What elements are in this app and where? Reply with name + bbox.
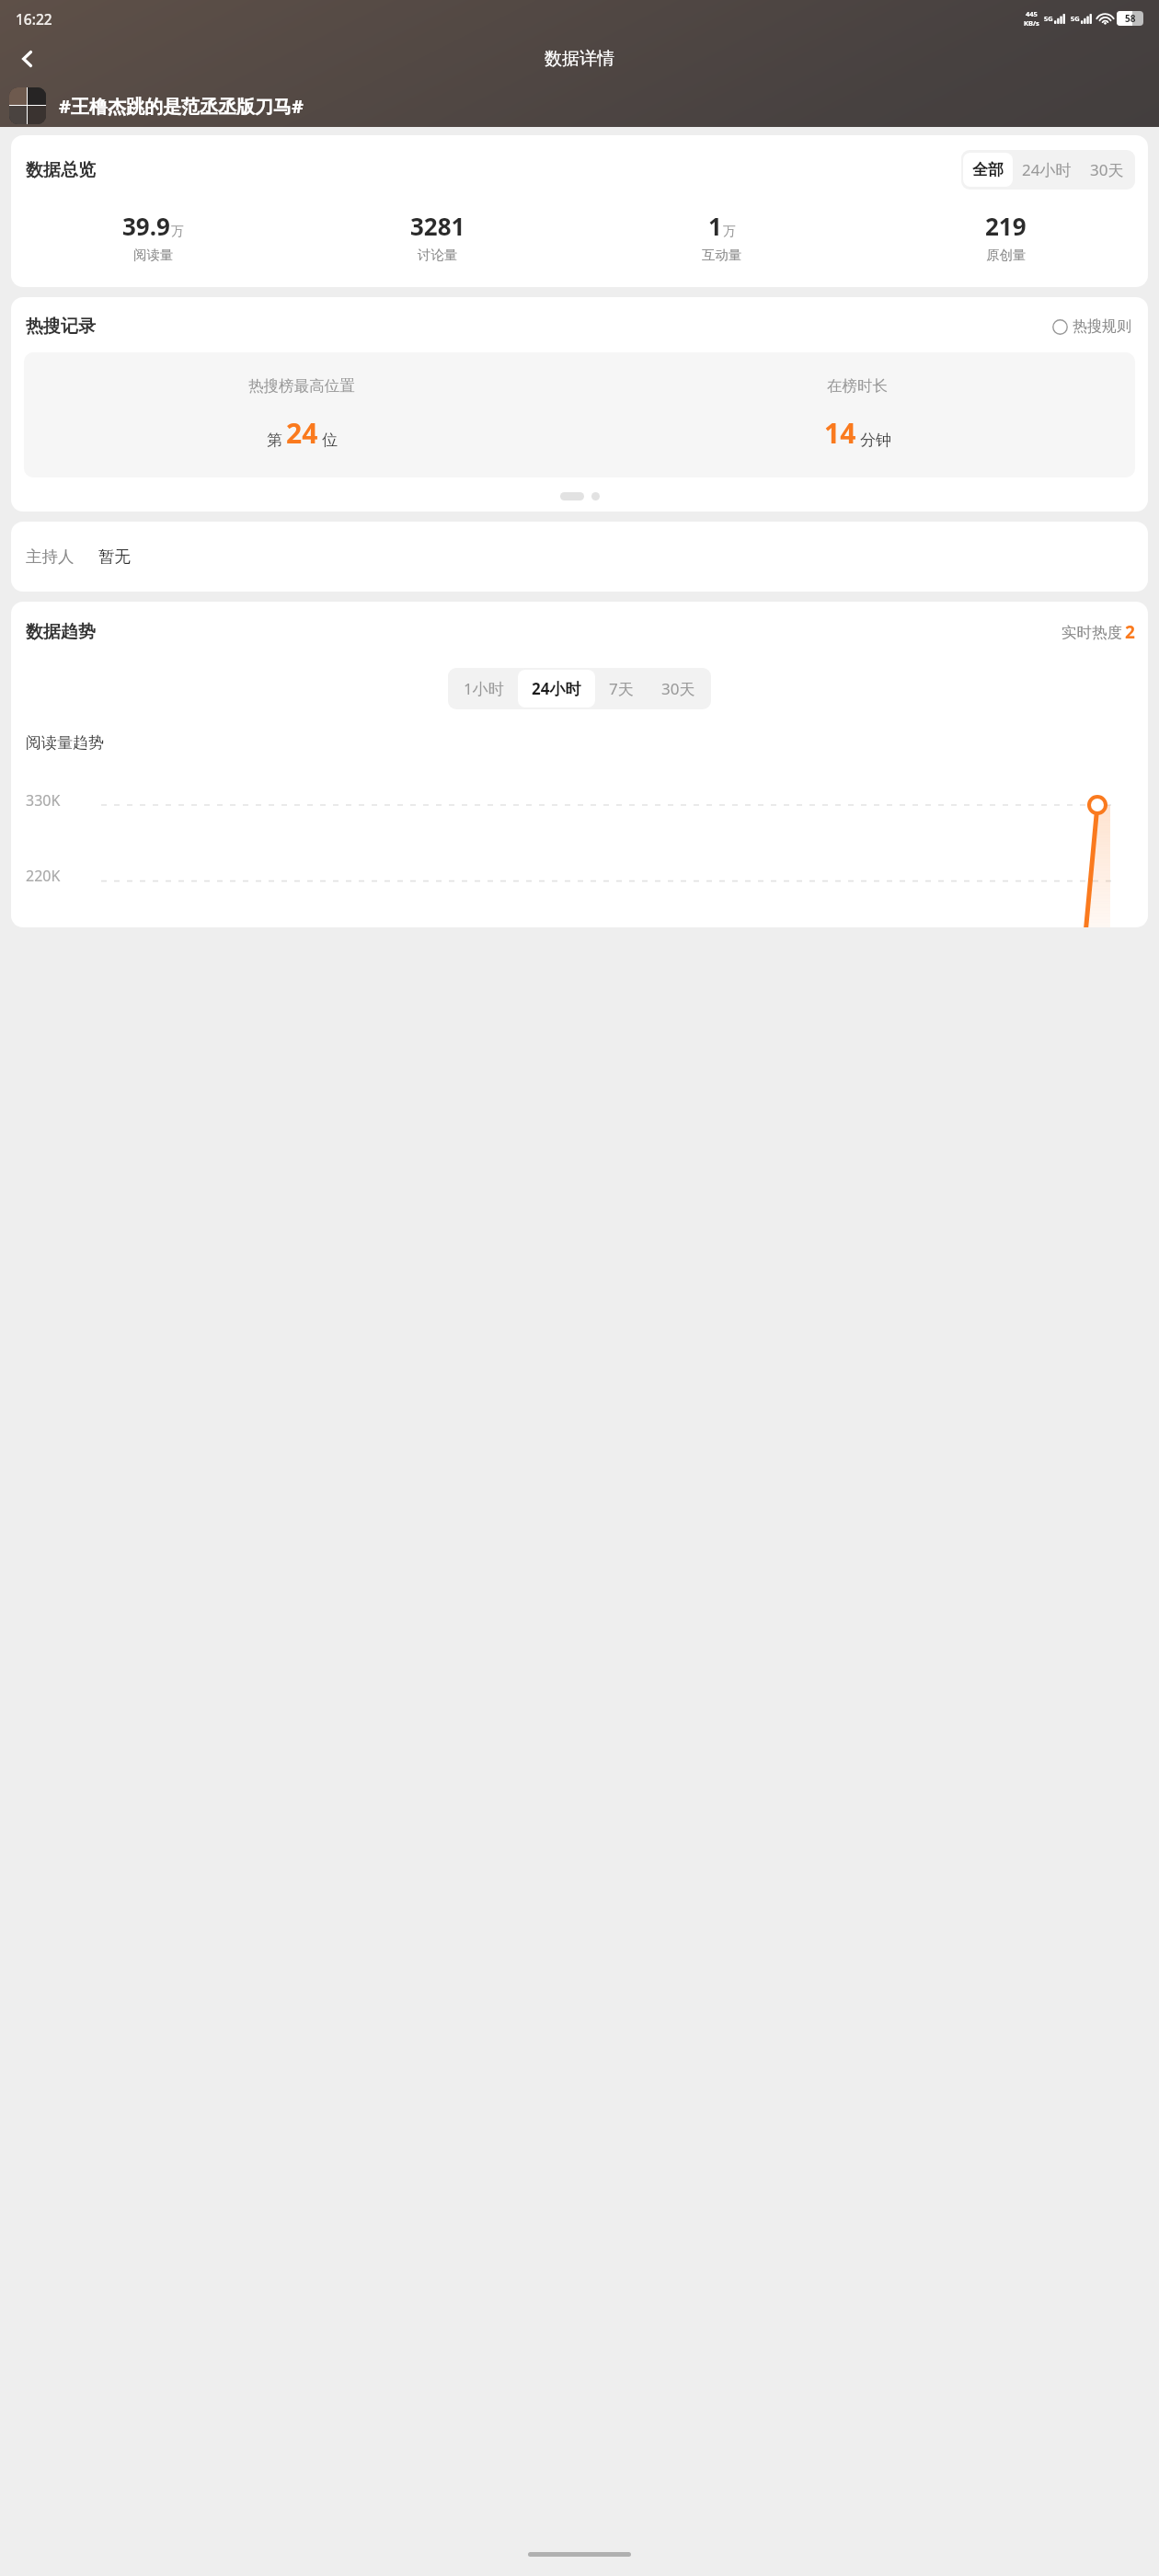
staticText: 阅读量 [133, 247, 174, 263]
staticText: 数据总览 [26, 159, 96, 181]
staticText: #王橹杰跳的是范丞丞版刀马# [59, 94, 304, 119]
staticText: 互动量 [702, 247, 742, 263]
staticText: 39.9 [122, 210, 170, 242]
staticText: 热搜榜最高位置 [248, 376, 355, 396]
staticText: 14 [824, 414, 856, 452]
button[interactable]: 30天 [1081, 152, 1133, 188]
staticText: 330K [26, 790, 61, 811]
staticText: 数据趋势 [26, 621, 96, 643]
button[interactable]: Back [7, 39, 48, 79]
staticText: 阅读量趋势 [26, 733, 104, 753]
staticText: 30天 [661, 678, 695, 699]
button[interactable]: 7天 [595, 670, 648, 707]
staticText: 在榜时长 [827, 376, 888, 396]
staticText: 全部 [972, 160, 1004, 179]
staticText: 万 [171, 224, 184, 240]
staticText: 热搜记录 [26, 316, 96, 338]
button[interactable]: 30天 [648, 670, 709, 707]
button[interactable]: 全部 [963, 153, 1013, 187]
staticText: 5G [1071, 14, 1080, 23]
staticText: 1 [708, 210, 722, 242]
staticText: 58 [1125, 12, 1136, 25]
staticText: 16:22 [16, 9, 52, 29]
staticText: 24小时 [1022, 159, 1072, 180]
staticText: 原创量 [986, 247, 1027, 263]
staticText: 万 [723, 224, 736, 240]
staticText: 分钟 [860, 431, 891, 450]
staticText: 热搜规则 [1073, 317, 1131, 336]
staticText: 24 [286, 414, 318, 452]
staticText: 3281 [410, 210, 465, 242]
staticText: 220K [26, 866, 61, 886]
staticText: 7天 [609, 678, 634, 699]
staticText: 30天 [1090, 159, 1124, 180]
button[interactable]: 1小时 [450, 670, 518, 707]
staticText: 1小时 [464, 678, 504, 699]
staticText: KB/s [1024, 18, 1039, 28]
staticText: 24小时 [532, 678, 581, 699]
staticText: 讨论量 [418, 247, 458, 263]
staticText: 445 [1026, 9, 1038, 18]
button[interactable]: 热搜规则 [1049, 314, 1135, 339]
staticText: 实时热度 [1061, 623, 1122, 642]
staticText: 主持人 [26, 546, 75, 567]
button[interactable]: 24小时 [1013, 152, 1081, 188]
staticText: 数据详情 [545, 48, 614, 70]
button[interactable] [9, 87, 46, 124]
staticText: 2 [1125, 620, 1135, 644]
staticText: 第 [267, 431, 282, 450]
staticText: 位 [322, 431, 338, 450]
button[interactable]: 24小时 [518, 670, 595, 707]
staticText: 219 [985, 210, 1027, 242]
staticText: 暂无 [98, 546, 131, 567]
staticText: 5G [1044, 14, 1053, 23]
